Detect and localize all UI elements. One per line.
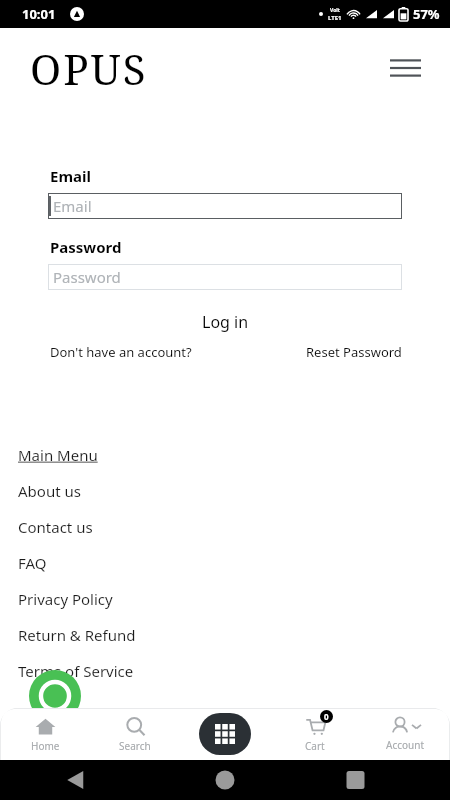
staticText: Contact us: [18, 517, 93, 537]
staticText: Return & Refund: [18, 625, 136, 645]
staticText: Home: [31, 739, 60, 753]
button[interactable]: Reset Password: [306, 343, 402, 361]
staticText: Log in: [202, 311, 249, 333]
button[interactable]: Return & Refund: [0, 617, 450, 653]
staticText: FAQ: [18, 553, 47, 573]
staticText: Password: [50, 237, 122, 257]
button[interactable]: Password: [48, 264, 402, 290]
staticText: Email: [53, 196, 92, 216]
button[interactable]: Email: [48, 193, 402, 219]
button[interactable]: Terms of Service: [0, 653, 450, 689]
button[interactable]: About us: [0, 473, 450, 509]
staticText: About us: [18, 481, 81, 501]
button[interactable]: Chat on WhatsApp: [29, 670, 81, 722]
staticText: Reset Password: [306, 343, 402, 361]
staticText: LTE1: [328, 14, 342, 22]
button[interactable]: Log in: [0, 307, 450, 337]
button[interactable]: Menu: [383, 46, 427, 90]
staticText: Main Menu: [18, 445, 98, 465]
staticText: Cart: [305, 739, 325, 753]
staticText: Search: [119, 739, 151, 753]
button[interactable]: Contact us: [0, 509, 450, 545]
staticText: Terms of Service: [18, 661, 134, 681]
button[interactable]: FAQ: [0, 545, 450, 581]
button[interactable]: Categories: [180, 708, 270, 760]
staticText: Privacy Policy: [18, 589, 113, 609]
staticText: OPUS: [30, 40, 148, 97]
staticText: Don't have an account?: [50, 343, 192, 361]
button[interactable]: Privacy Policy: [0, 581, 450, 617]
button[interactable]: Account: [360, 708, 450, 760]
button[interactable]: Main Menu: [0, 437, 450, 473]
button[interactable]: 0: [270, 708, 360, 760]
staticText: 57%: [413, 5, 440, 23]
staticText: Password: [53, 267, 121, 287]
button[interactable]: Home: [0, 708, 90, 760]
staticText: Account: [386, 738, 425, 752]
button[interactable]: Search: [90, 708, 180, 760]
staticText: 0: [324, 711, 329, 722]
staticText: Email: [50, 166, 91, 186]
button[interactable]: Don't have an account?: [50, 343, 192, 361]
staticText: Volt: [330, 7, 340, 14]
staticText: 10:01: [22, 5, 56, 23]
